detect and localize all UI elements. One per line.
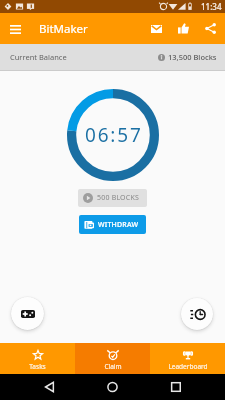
staticText: 13,500 Blocks — [168, 52, 217, 62]
button[interactable]: 500 BLOCKS — [78, 189, 147, 207]
staticText: Tasks — [29, 362, 46, 371]
button[interactable]: Like — [170, 15, 197, 42]
button[interactable]: Messages — [143, 15, 170, 42]
button[interactable]: Leaderboard — [150, 343, 225, 374]
button[interactable]: Play games — [11, 297, 44, 330]
staticText: BitMaker — [39, 21, 88, 37]
staticText: 06:57 — [85, 122, 143, 148]
staticText: Claim — [104, 362, 122, 371]
staticText: WITHDRAW — [98, 220, 139, 230]
staticText: 500 BLOCKS — [97, 193, 139, 203]
button[interactable]: Open navigation menu — [0, 14, 30, 44]
staticText: 11:34 — [201, 1, 222, 12]
staticText: Current Balance — [10, 52, 67, 62]
button[interactable]: History — [181, 298, 213, 330]
button[interactable]: Share — [197, 15, 224, 42]
button[interactable]: Current Balance — [0, 44, 225, 70]
staticText: Leaderboard — [168, 362, 208, 371]
button[interactable]: WITHDRAW — [79, 215, 146, 234]
button[interactable]: Tasks — [0, 343, 75, 374]
button[interactable]: Claim — [75, 343, 150, 374]
